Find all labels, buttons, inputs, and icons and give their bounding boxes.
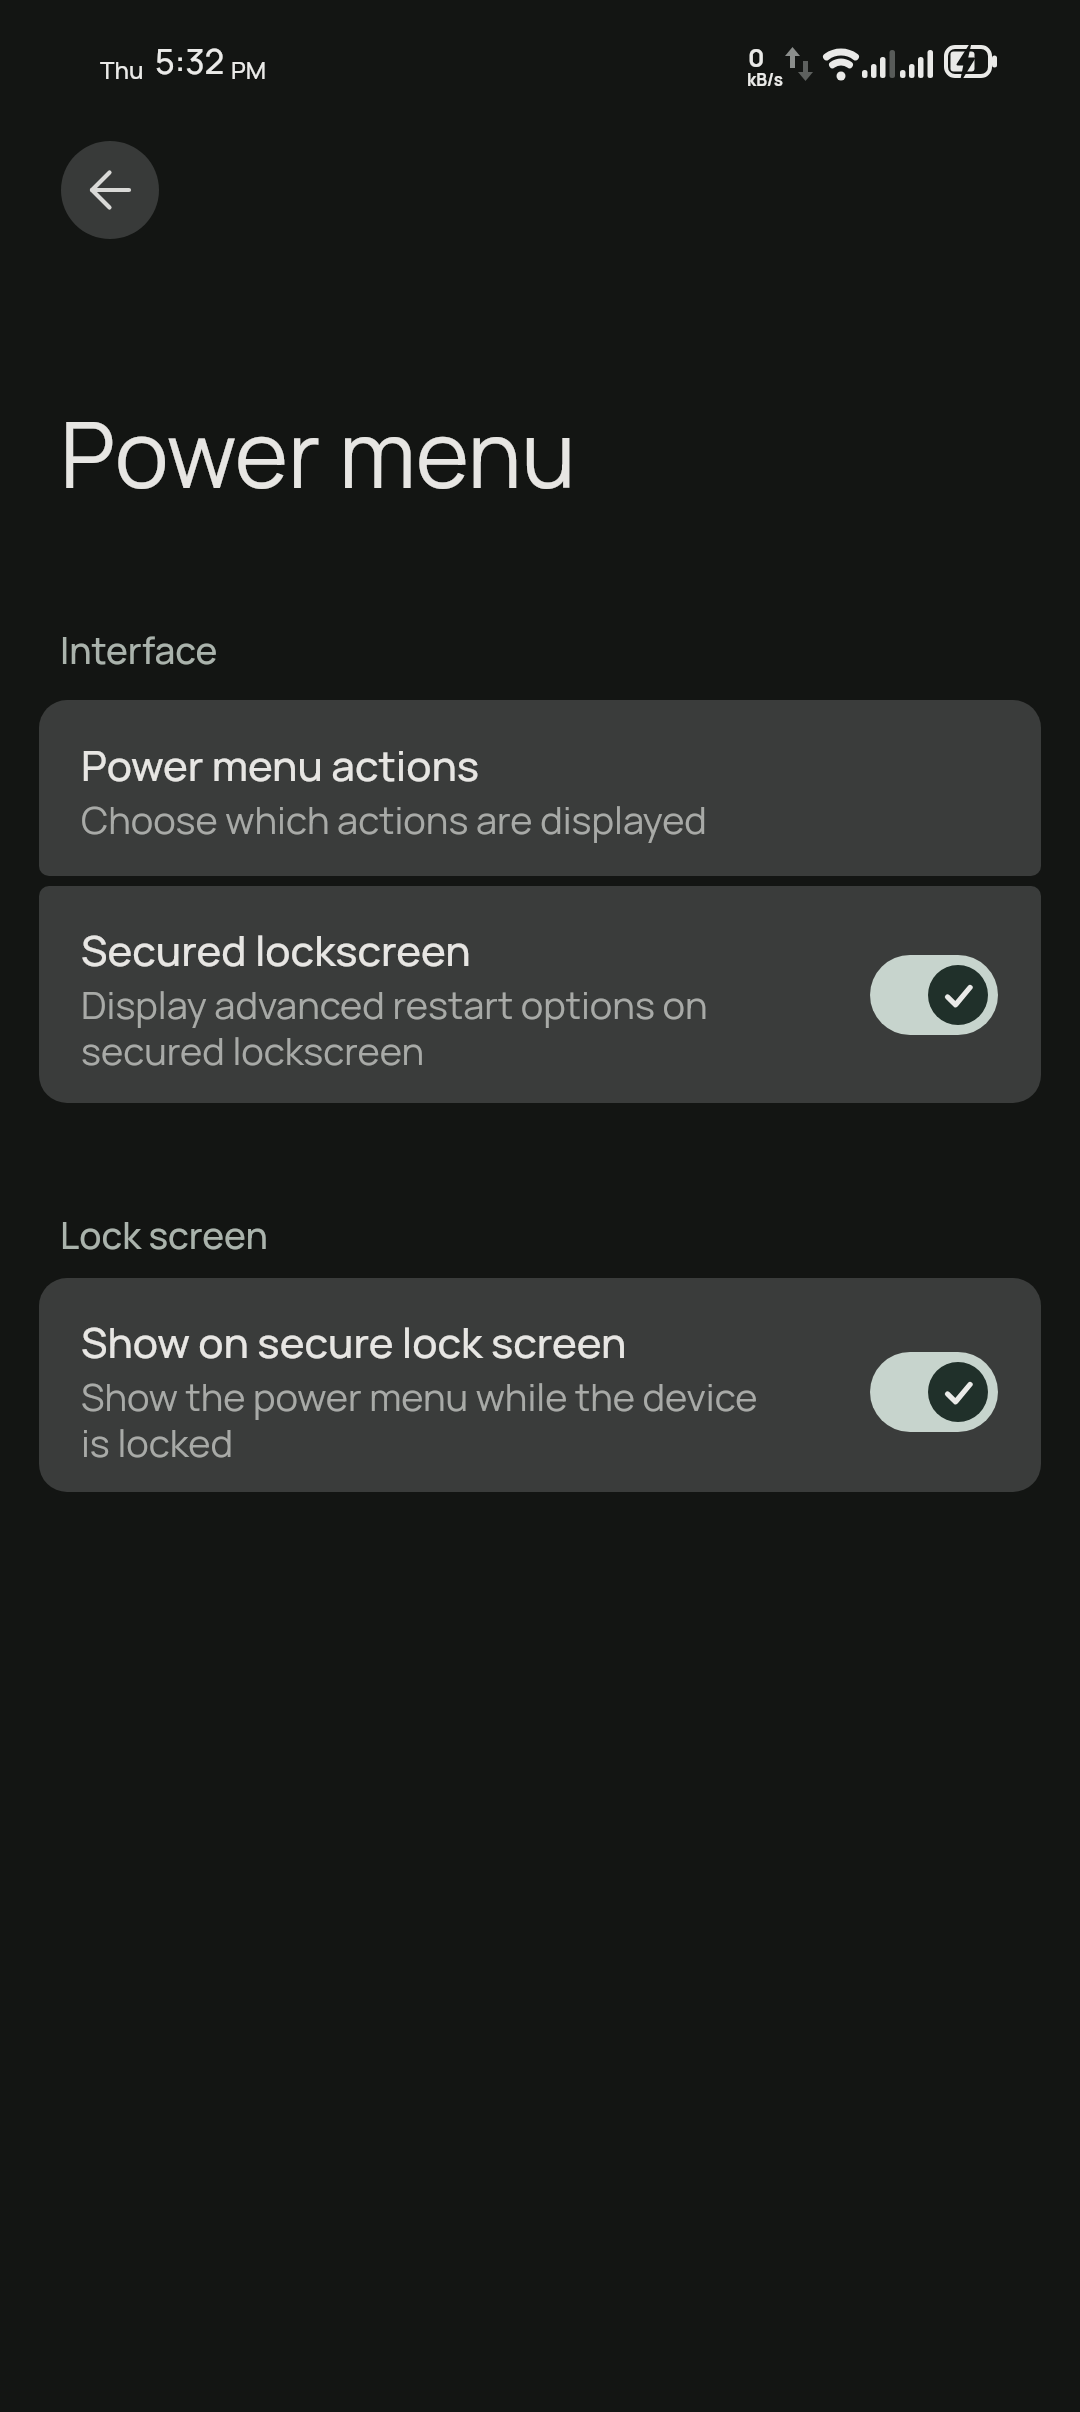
staticText: Thu xyxy=(100,53,144,86)
staticText: Interface xyxy=(60,625,218,676)
button[interactable]: Secured lockscreen xyxy=(39,886,1041,1103)
staticText: Show the power menu while the device is … xyxy=(81,1370,786,1468)
button[interactable] xyxy=(870,955,998,1035)
staticText: Display advanced restart options on secu… xyxy=(81,978,781,1076)
staticText: kB/s xyxy=(747,68,783,91)
button[interactable]: Show on secure lock screen xyxy=(39,1278,1041,1492)
staticText: Secured lockscreen xyxy=(81,921,471,978)
staticText: Show on secure lock screen xyxy=(81,1313,627,1370)
button[interactable] xyxy=(61,141,159,239)
staticText: PM xyxy=(231,53,267,86)
staticText: Power menu actions xyxy=(81,736,480,793)
staticText: Power menu xyxy=(60,391,576,515)
staticText: 0 xyxy=(748,40,765,74)
staticText: Lock screen xyxy=(60,1210,268,1261)
button[interactable]: Power menu actions xyxy=(39,700,1041,876)
staticText: 5:32 xyxy=(155,38,225,84)
button[interactable] xyxy=(870,1352,998,1432)
staticText: Choose which actions are displayed xyxy=(81,793,707,845)
